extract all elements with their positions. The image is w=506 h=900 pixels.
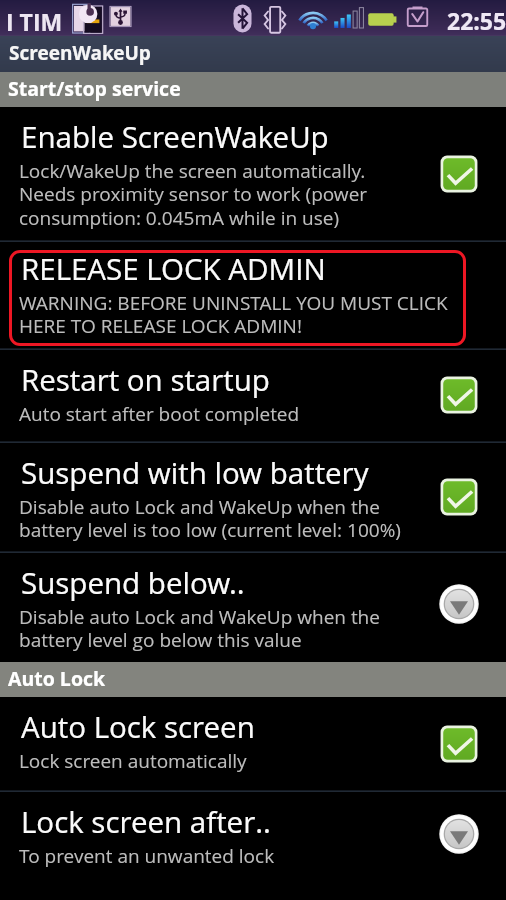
button[interactable] (9, 250, 466, 346)
button[interactable]: Toggle setting (440, 478, 478, 516)
staticText: 22:55 (447, 5, 506, 36)
button[interactable]: Lock screen after.. (0, 792, 506, 900)
staticText: Suspend below.. (21, 562, 245, 602)
staticText: Auto Lock screen (21, 706, 255, 746)
staticText: RELEASE LOCK ADMIN (21, 248, 326, 288)
staticText: Lock screen automatically (19, 748, 247, 774)
button[interactable]: Suspend with low battery (0, 443, 506, 551)
staticText: WARNING: BEFORE UNINSTALL YOU MUST CLICK… (19, 290, 448, 339)
staticText: To prevent an unwanted lock (19, 843, 275, 869)
staticText: Auto start after boot completed (19, 401, 300, 427)
staticText: Lock screen after.. (21, 801, 271, 841)
staticText: Suspend with low battery (21, 452, 369, 492)
staticText: ScreenWakeUp (9, 40, 151, 66)
button[interactable]: Enable ScreenWakeUp (0, 107, 506, 240)
button[interactable]: Suspend below.. (0, 553, 506, 662)
button[interactable]: Open options (438, 813, 480, 855)
staticText: Auto Lock (8, 665, 106, 692)
staticText: Start/stop service (8, 75, 181, 102)
staticText: Enable ScreenWakeUp (21, 116, 329, 156)
staticText: Lock/WakeUp the screen automatically. Ne… (19, 158, 368, 231)
staticText: Disable auto Lock and WakeUp when the ba… (19, 494, 401, 543)
button[interactable]: Toggle setting (440, 155, 478, 193)
staticText: Restart on startup (21, 359, 270, 399)
button[interactable]: Auto Lock screen (0, 697, 506, 790)
staticText: I TIM (6, 6, 63, 37)
button[interactable]: Open options (438, 583, 480, 625)
button[interactable]: Toggle setting (440, 376, 478, 414)
button[interactable]: Restart on startup (0, 350, 506, 441)
button[interactable]: Toggle setting (440, 725, 478, 763)
staticText: Disable auto Lock and WakeUp when the ba… (19, 604, 380, 653)
